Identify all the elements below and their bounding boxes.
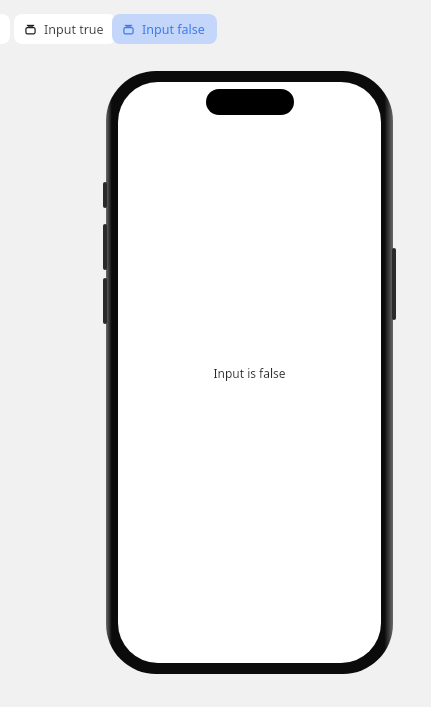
button[interactable]: Previous option bbox=[0, 14, 10, 44]
button[interactable]: Input false bbox=[112, 14, 217, 44]
button[interactable]: Input true bbox=[14, 14, 116, 44]
staticText: Input is false bbox=[213, 365, 286, 381]
staticText: Input false bbox=[142, 21, 205, 38]
staticText: Input true bbox=[44, 21, 104, 38]
